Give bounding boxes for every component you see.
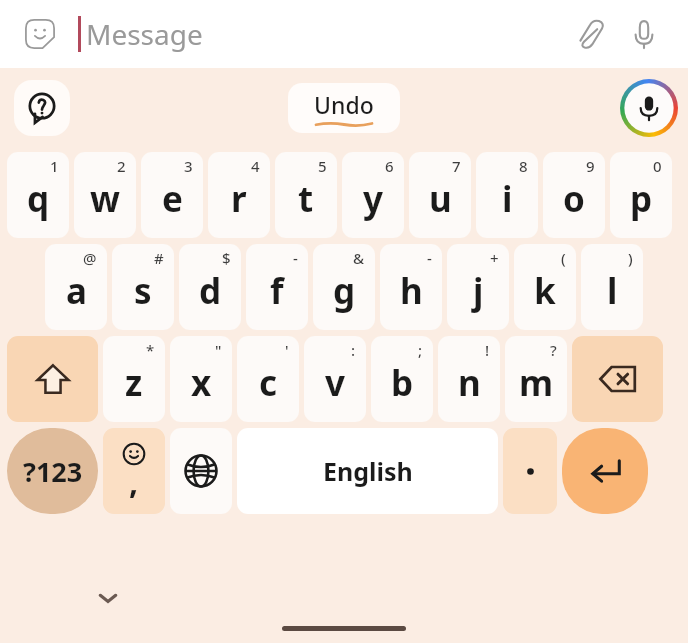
staticText: 6 xyxy=(385,156,394,176)
button[interactable]: r xyxy=(208,152,270,238)
staticText: i xyxy=(502,175,513,223)
button[interactable]: Enter xyxy=(562,428,648,514)
staticText: q xyxy=(27,175,50,223)
staticText: ?123 xyxy=(23,453,83,490)
button[interactable]: ?123 xyxy=(7,428,98,514)
button[interactable]: q xyxy=(7,152,69,238)
staticText: u xyxy=(429,175,452,223)
button[interactable]: s xyxy=(112,244,174,330)
staticText: 7 xyxy=(452,156,461,176)
button[interactable]: l xyxy=(581,244,643,330)
staticText: c xyxy=(259,359,278,407)
button[interactable]: o xyxy=(543,152,605,238)
staticText: w xyxy=(90,175,120,223)
button[interactable]: v xyxy=(304,336,366,422)
staticText: m xyxy=(519,359,554,407)
button[interactable]: Emoji and comma xyxy=(103,428,165,514)
button[interactable]: z xyxy=(103,336,165,422)
button[interactable]: j xyxy=(447,244,509,330)
button[interactable]: i xyxy=(476,152,538,238)
staticText: ) xyxy=(628,248,633,268)
staticText: " xyxy=(215,340,222,360)
button[interactable]: Change language xyxy=(170,428,232,514)
button[interactable]: u xyxy=(409,152,471,238)
staticText: h xyxy=(400,267,423,315)
button[interactable]: d xyxy=(179,244,241,330)
button[interactable]: Record voice message xyxy=(622,12,666,56)
button[interactable]: Help xyxy=(14,80,70,136)
staticText: r xyxy=(231,175,247,223)
staticText: g xyxy=(333,267,356,315)
button[interactable]: x xyxy=(170,336,232,422)
staticText: k xyxy=(534,267,556,315)
staticText: v xyxy=(325,359,345,407)
staticText: y xyxy=(363,175,383,223)
button[interactable]: Stickers xyxy=(18,12,62,56)
staticText: d xyxy=(199,267,222,315)
staticText: Message xyxy=(86,15,203,53)
button[interactable]: Voice typing xyxy=(620,79,678,137)
staticText: ' xyxy=(285,340,289,360)
staticText: 8 xyxy=(519,156,528,176)
button[interactable]: f xyxy=(246,244,308,330)
button[interactable]: n xyxy=(438,336,500,422)
staticText: 1 xyxy=(50,156,59,176)
button[interactable]: p xyxy=(610,152,672,238)
button[interactable]: h xyxy=(380,244,442,330)
staticText: ! xyxy=(485,340,490,360)
staticText: * xyxy=(146,340,155,360)
staticText: English xyxy=(323,454,413,488)
staticText: t xyxy=(298,175,314,223)
staticText: # xyxy=(154,248,164,268)
staticText: x xyxy=(191,359,212,407)
button[interactable]: Hide keyboard xyxy=(88,578,128,618)
button[interactable]: t xyxy=(275,152,337,238)
staticText: f xyxy=(270,267,284,315)
staticText: o xyxy=(563,175,585,223)
staticText: - xyxy=(427,248,432,268)
button[interactable]: y xyxy=(342,152,404,238)
button[interactable]: Period xyxy=(503,428,557,514)
staticText: z xyxy=(125,359,143,407)
button[interactable]: Backspace xyxy=(572,336,663,422)
button[interactable]: Shift xyxy=(7,336,98,422)
button[interactable]: a xyxy=(45,244,107,330)
staticText: ; xyxy=(418,340,423,360)
staticText: l xyxy=(607,267,618,315)
staticText: p xyxy=(630,175,653,223)
staticText: b xyxy=(391,359,414,407)
button[interactable]: c xyxy=(237,336,299,422)
staticText: s xyxy=(134,267,152,315)
button[interactable]: Attach file xyxy=(568,12,612,56)
staticText: - xyxy=(293,248,298,268)
button[interactable]: g xyxy=(313,244,375,330)
staticText: $ xyxy=(222,248,231,268)
staticText: Undo xyxy=(314,89,374,120)
staticText: j xyxy=(473,267,484,315)
staticText: 0 xyxy=(653,156,662,176)
button[interactable]: w xyxy=(74,152,136,238)
staticText: 4 xyxy=(251,156,260,176)
button[interactable]: English xyxy=(237,428,498,514)
staticText: 2 xyxy=(117,156,126,176)
staticText: & xyxy=(353,248,365,268)
staticText: ( xyxy=(561,248,566,268)
staticText: e xyxy=(162,175,183,223)
button[interactable]: k xyxy=(514,244,576,330)
button[interactable]: m xyxy=(505,336,567,422)
staticText: 5 xyxy=(318,156,327,176)
staticText: 3 xyxy=(184,156,193,176)
staticText: + xyxy=(490,248,499,268)
staticText: ? xyxy=(550,340,557,360)
staticText: , xyxy=(129,460,139,504)
staticText: a xyxy=(66,267,87,315)
button[interactable]: e xyxy=(141,152,203,238)
staticText: 9 xyxy=(586,156,595,176)
button[interactable]: Undo xyxy=(288,83,400,133)
button[interactable]: b xyxy=(371,336,433,422)
staticText: n xyxy=(458,359,481,407)
staticText: : xyxy=(351,340,356,360)
staticText: @ xyxy=(83,248,97,268)
